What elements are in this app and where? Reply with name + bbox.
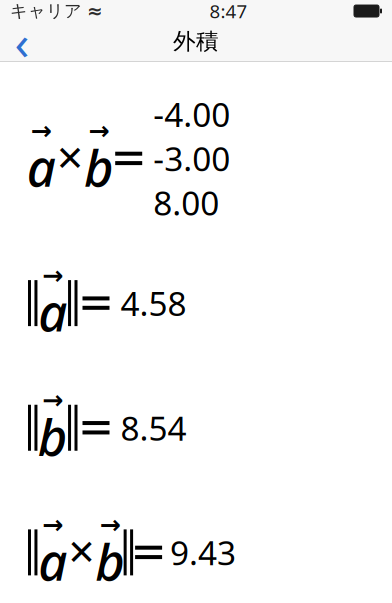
staticText: → xyxy=(42,510,63,539)
button[interactable]: Back xyxy=(0,22,44,61)
staticText: キャリア xyxy=(10,0,82,22)
staticText: -3.00 xyxy=(153,136,230,181)
staticText: -4.00 xyxy=(153,92,230,136)
staticText: 外積 xyxy=(173,28,219,55)
staticText: 8.54 xyxy=(120,406,186,450)
staticText: → xyxy=(100,510,121,539)
staticText: 9.43 xyxy=(170,530,236,575)
staticText: → xyxy=(42,261,63,290)
staticText: b xyxy=(84,133,114,201)
staticText: ✕ xyxy=(56,139,85,178)
staticText: a xyxy=(27,133,56,201)
staticText: b xyxy=(95,527,125,595)
staticText: b xyxy=(38,403,68,470)
staticText: ‹ xyxy=(14,10,29,73)
staticText: ✕ xyxy=(67,533,96,572)
staticText: ≈ xyxy=(87,0,103,22)
staticText: → xyxy=(31,116,52,145)
staticText: 8:47 xyxy=(209,0,247,23)
staticText: a xyxy=(38,527,67,595)
staticText: a xyxy=(38,278,67,345)
staticText: → xyxy=(88,116,109,145)
staticText: → xyxy=(42,385,63,414)
staticText: 4.58 xyxy=(120,281,186,325)
staticText: 8.00 xyxy=(153,180,219,225)
